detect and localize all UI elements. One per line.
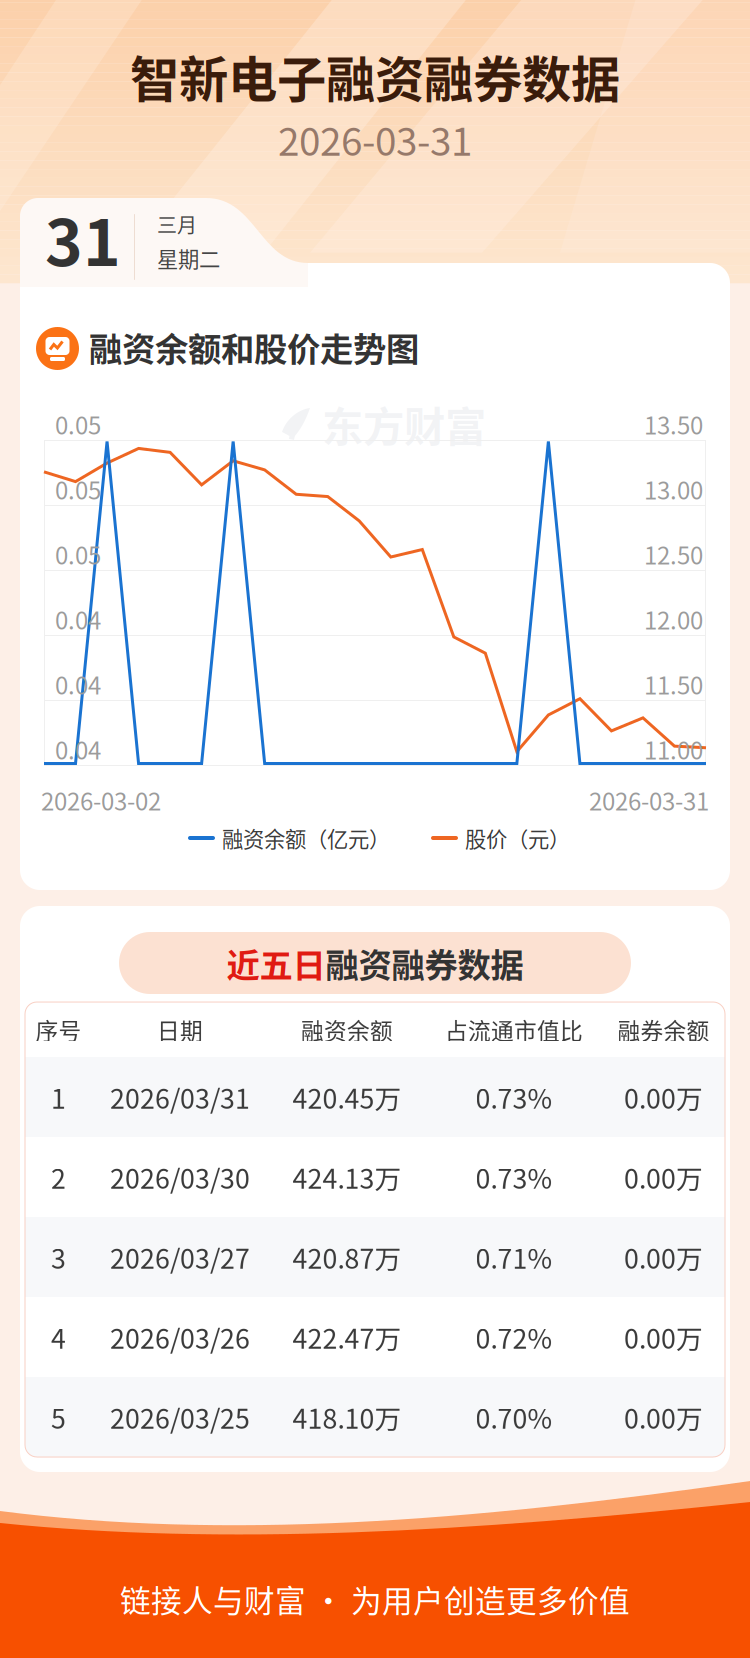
staticText: 序号 (35, 1013, 81, 1046)
staticText: 融资余额 (301, 1013, 393, 1046)
staticText: 0.05 (55, 472, 101, 506)
staticText: 424.13万 (292, 1158, 401, 1196)
staticText: 12.50 (644, 537, 703, 571)
staticText: 占流通市值比 (445, 1013, 583, 1046)
staticText: 5 (51, 1398, 66, 1436)
staticText: 0.05 (55, 537, 101, 571)
staticText: 2026/03/26 (110, 1318, 250, 1356)
staticText: 2026/03/30 (110, 1158, 250, 1196)
staticText: 智新电子融资融券数据 (130, 40, 620, 112)
staticText: 13.50 (644, 407, 703, 441)
staticText: 1 (51, 1078, 66, 1116)
staticText: 0.00万 (624, 1158, 703, 1196)
staticText: 13.00 (644, 472, 703, 506)
staticText: 0.00万 (624, 1078, 703, 1116)
staticText: 11.00 (644, 732, 703, 766)
staticText: 0.73% (475, 1078, 552, 1116)
staticText: 0.00万 (624, 1398, 703, 1436)
staticText: 2026/03/25 (110, 1398, 250, 1436)
staticText: 0.00万 (624, 1238, 703, 1276)
staticText: 融资余额（亿元） (222, 823, 390, 853)
staticText: 股价（元） (465, 823, 570, 853)
staticText: 0.04 (55, 602, 101, 636)
staticText: 三月 (157, 209, 197, 238)
staticText: 11.50 (644, 667, 703, 701)
staticText: 2026/03/31 (110, 1078, 250, 1116)
staticText: 东方财富 (322, 394, 486, 454)
staticText: 0.73% (475, 1158, 552, 1196)
staticText: 420.87万 (292, 1238, 401, 1276)
staticText: 0.72% (475, 1318, 552, 1356)
staticText: 链接人与财富 · 为用户创造更多价值 (120, 1577, 630, 1621)
staticText: 0.05 (55, 407, 101, 441)
staticText: 0.04 (55, 667, 101, 701)
staticText: 0.70% (475, 1398, 552, 1436)
staticText: 2 (51, 1158, 66, 1196)
staticText: 0.71% (475, 1238, 552, 1276)
staticText: 融资融券数据 (325, 939, 523, 987)
staticText: 422.47万 (292, 1318, 401, 1356)
staticText: 3 (51, 1238, 66, 1276)
staticText: 近五日 (226, 939, 325, 987)
staticText: 2026-03-31 (278, 111, 472, 167)
staticText: 2026-03-02 (41, 783, 161, 817)
staticText: 4 (51, 1318, 66, 1356)
staticText: 融资余额和股价走势图 (89, 323, 419, 371)
staticText: 融券余额 (617, 1013, 709, 1046)
staticText: 星期二 (157, 243, 220, 273)
staticText: 2026-03-31 (589, 783, 709, 817)
staticText: 420.45万 (292, 1078, 401, 1116)
staticText: 0.04 (55, 732, 101, 766)
staticText: 日期 (157, 1013, 203, 1046)
staticText: 418.10万 (292, 1398, 401, 1436)
staticText: 12.00 (644, 602, 703, 636)
staticText: 31 (45, 192, 121, 284)
staticText: 0.00万 (624, 1318, 703, 1356)
staticText: 2026/03/27 (110, 1238, 250, 1276)
